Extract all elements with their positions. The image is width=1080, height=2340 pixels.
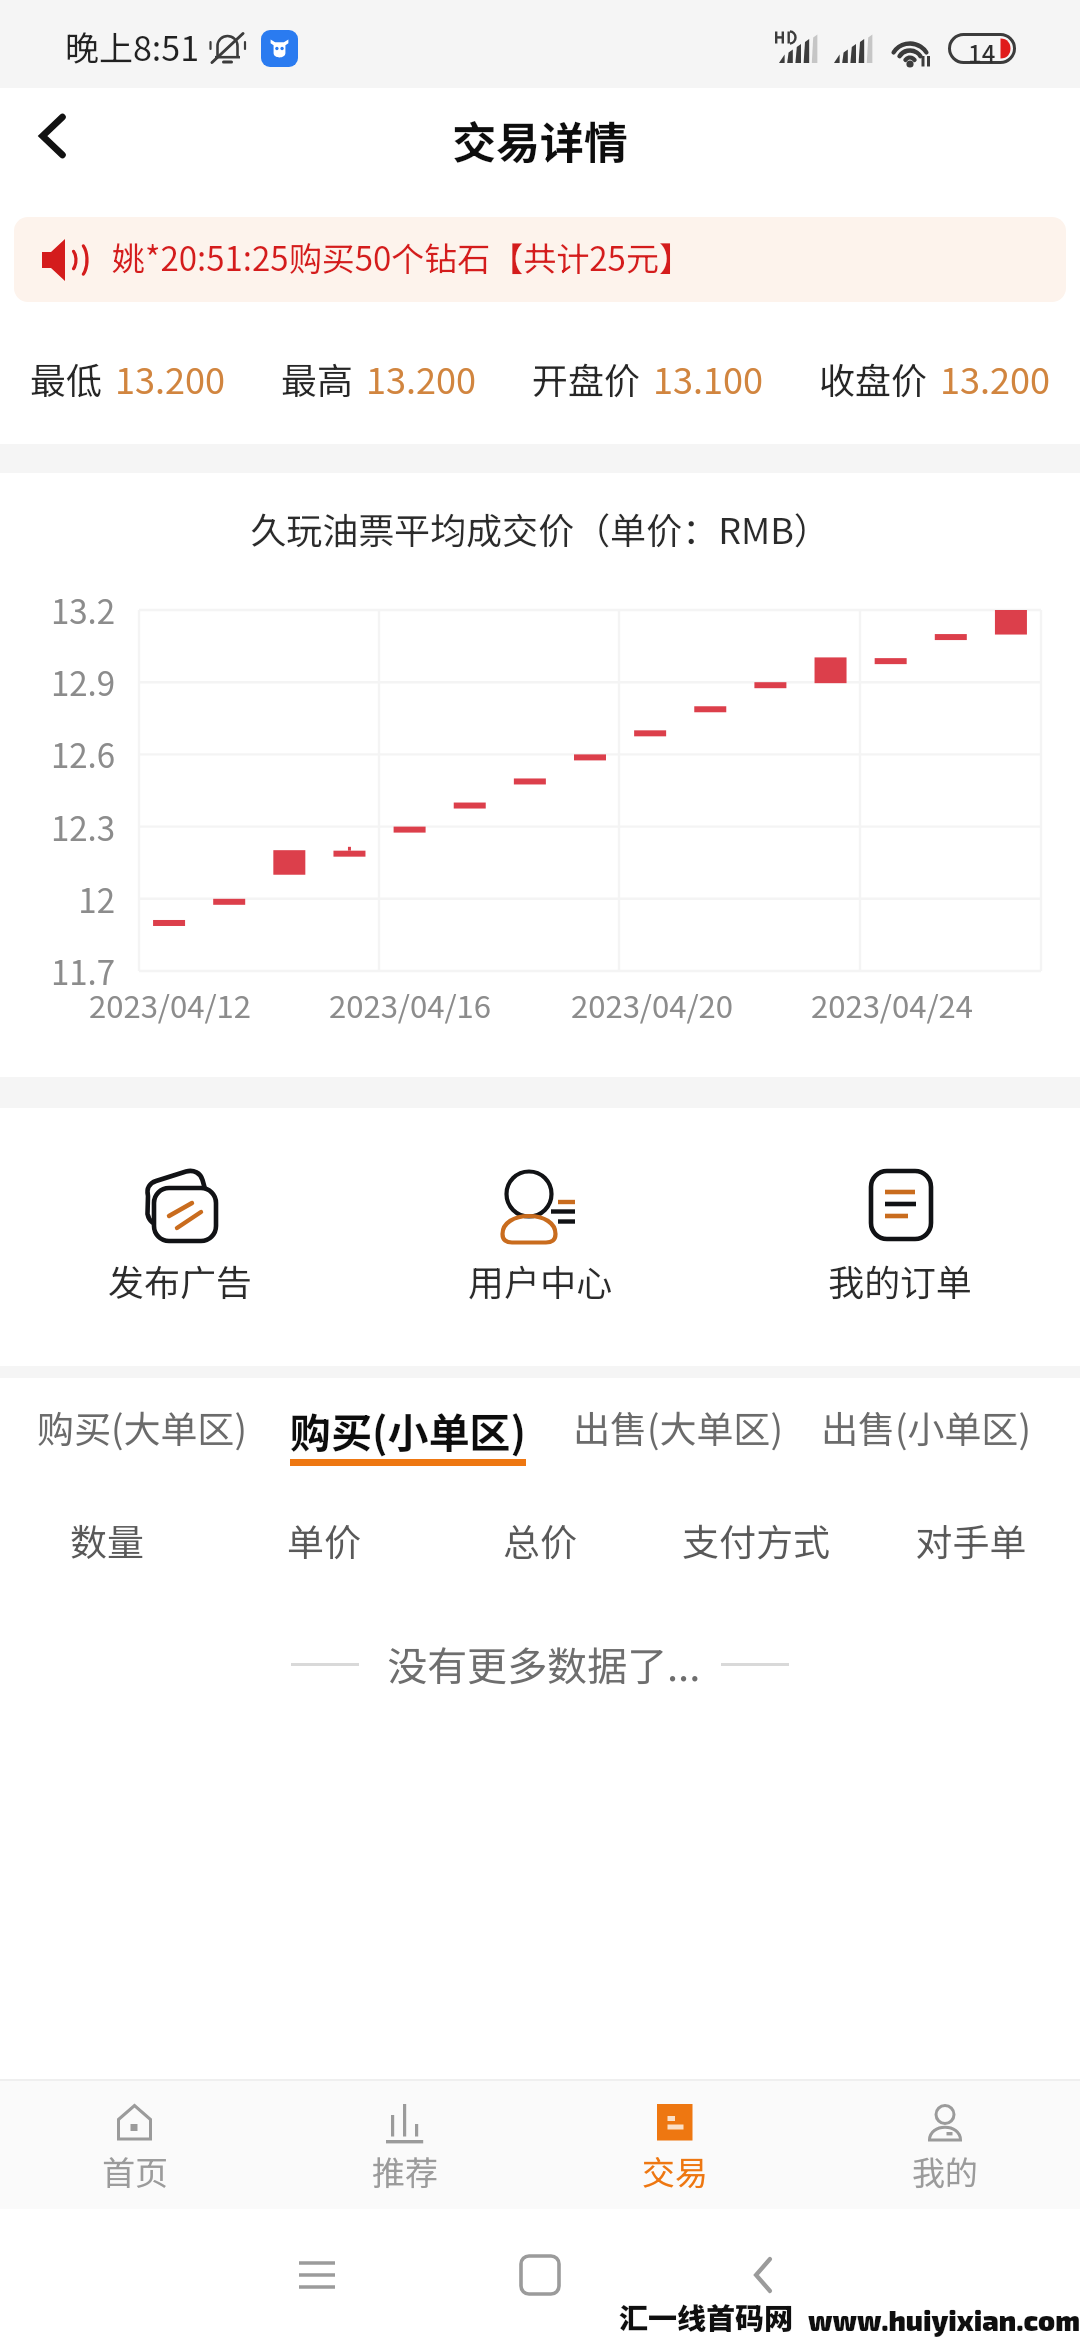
staticText: 总价	[400, 1513, 680, 1567]
button[interactable]: 首页	[0, 2081, 270, 2209]
staticText: 2023/04/20	[522, 982, 782, 1027]
button[interactable]: 发布广告	[0, 1108, 360, 1366]
staticText: 出售(大单区)	[573, 1400, 784, 1454]
staticText: 没有更多数据了...	[387, 1635, 701, 1693]
staticText: 用户中心	[360, 1254, 720, 1306]
staticText: 12.3	[0, 803, 115, 851]
staticText: 2023/04/24	[762, 982, 1022, 1027]
staticText: 13.2	[0, 586, 115, 634]
button[interactable]: 购买(小单区)	[258, 1400, 558, 1466]
staticText: 2023/04/12	[40, 982, 300, 1027]
staticText: 最低	[30, 352, 103, 404]
button[interactable]: 用户中心	[360, 1108, 720, 1366]
staticText: 单价	[184, 1513, 464, 1567]
staticText: 推荐	[270, 2147, 540, 2195]
staticText: 13.100	[653, 352, 763, 404]
staticText: 出售(小单区)	[821, 1400, 1032, 1454]
staticText: 12	[0, 875, 115, 923]
staticText: 汇一线首码网	[619, 2295, 794, 2337]
staticText: 交易详情	[452, 108, 628, 172]
staticText: 晚上8:51	[65, 22, 200, 71]
button[interactable]: 我的	[810, 2081, 1080, 2209]
button[interactable]: 推荐	[270, 2081, 540, 2209]
button[interactable]: 交易	[540, 2081, 810, 2209]
button[interactable]: 购买(大单区)	[0, 1400, 292, 1454]
staticText: 12.9	[0, 658, 115, 706]
staticText: 收盘价	[819, 352, 928, 404]
staticText: 数量	[0, 1513, 247, 1567]
button[interactable]: Back	[0, 88, 104, 217]
button[interactable]: 出售(大单区)	[528, 1400, 828, 1454]
staticText: 姚*20:51:25购买50个钻石【共计25元】	[112, 233, 692, 281]
staticText: 14	[968, 35, 996, 66]
staticText: 首页	[0, 2147, 270, 2195]
staticText: 13.200	[115, 352, 225, 404]
staticText: 我的	[810, 2147, 1080, 2195]
staticText: 交易	[540, 2147, 810, 2195]
staticText: 开盘价	[532, 352, 641, 404]
staticText: 久玩油票平均成交价（单价：RMB）	[0, 502, 1080, 554]
button[interactable]: 出售(小单区)	[776, 1400, 1076, 1454]
button[interactable]: 我的订单	[720, 1108, 1080, 1366]
staticText: 最高	[281, 352, 354, 404]
button[interactable]: 姚*20:51:25购买50个钻石【共计25元】	[14, 217, 1066, 302]
staticText: 发布广告	[0, 1254, 360, 1306]
staticText: 12.6	[0, 730, 115, 778]
staticText: 购买(小单区)	[290, 1400, 526, 1459]
staticText: 2023/04/16	[280, 982, 540, 1027]
staticText: 购买(大单区)	[37, 1400, 248, 1454]
staticText: 支付方式	[616, 1513, 896, 1567]
staticText: 11.7	[0, 947, 115, 995]
staticText: 对手单	[831, 1513, 1080, 1567]
staticText: 我的订单	[720, 1254, 1080, 1306]
staticText: 13.200	[940, 352, 1050, 404]
staticText: www.huiyixian.com	[808, 2303, 1080, 2337]
staticText: 13.200	[366, 352, 476, 404]
